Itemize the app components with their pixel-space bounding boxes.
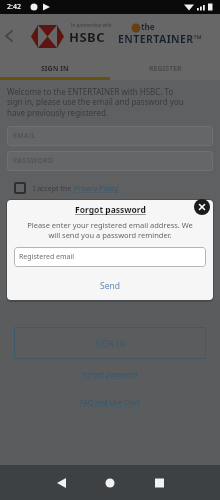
button[interactable]: SIGN IN — [14, 327, 206, 359]
button[interactable]: EMAIL — [7, 126, 213, 146]
staticText: the — [141, 21, 155, 32]
staticText: ENTERTAINER™ — [118, 32, 203, 46]
staticText: Forgot password — [75, 204, 146, 216]
button[interactable]: Privacy Policy — [74, 184, 119, 194]
button[interactable]: SIGN IN — [0, 57, 110, 80]
staticText: SIGN IN — [41, 64, 69, 74]
staticText: In partnership with — [71, 22, 112, 28]
staticText: Registered email — [19, 252, 75, 262]
staticText: Send — [100, 280, 120, 292]
staticText: HSBC — [69, 28, 106, 46]
button[interactable]: PASSWORD — [7, 151, 213, 171]
button[interactable] — [95, 468, 125, 498]
button[interactable]: Registered email — [14, 247, 206, 267]
button[interactable] — [47, 468, 77, 498]
button[interactable] — [14, 182, 26, 194]
staticText: I accept the — [33, 184, 74, 194]
button[interactable] — [194, 199, 210, 215]
button[interactable]: Forgot password — [82, 370, 138, 380]
staticText: EMAIL — [13, 131, 36, 141]
staticText: PASSWORD — [13, 156, 54, 166]
staticText: Please enter your registered email addre… — [12, 220, 208, 240]
button[interactable]: Send — [96, 276, 124, 296]
staticText: 2:42 — [7, 2, 21, 12]
staticText: REGISTER — [149, 64, 182, 74]
button[interactable] — [143, 468, 173, 498]
button[interactable] — [0, 24, 20, 48]
button[interactable]: FAQ and Live Chat — [80, 398, 140, 408]
button[interactable]: REGISTER — [110, 57, 220, 80]
staticText: Welcome to the ENTERTAINER with HSBC. To… — [7, 86, 213, 119]
staticText: SIGN IN — [95, 338, 126, 349]
